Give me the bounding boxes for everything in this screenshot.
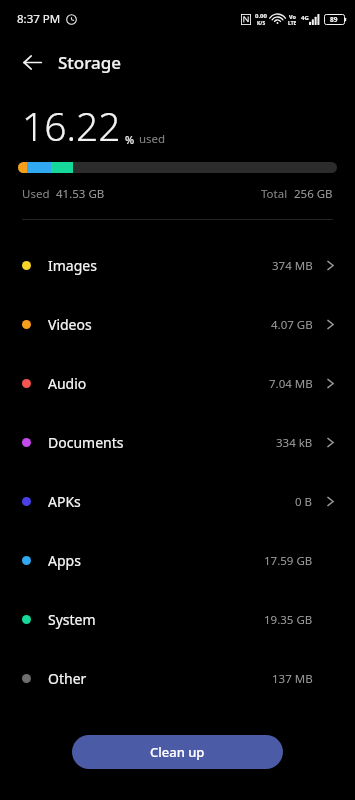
staticText: APKs xyxy=(48,492,81,511)
staticText: used xyxy=(139,131,166,147)
button[interactable]: System xyxy=(0,590,355,649)
button[interactable]: Videos xyxy=(0,295,355,354)
staticText: 256 GB xyxy=(294,186,333,202)
staticText: Clean up xyxy=(150,743,205,761)
button[interactable]: Other xyxy=(0,649,355,708)
staticText: Documents xyxy=(48,433,124,452)
staticText: 8:37 PM xyxy=(17,11,61,27)
staticText: 0 B xyxy=(295,494,313,510)
staticText: 16.22 xyxy=(22,99,121,152)
staticText: 41.53 GB xyxy=(56,186,105,202)
button[interactable]: Images xyxy=(0,236,355,295)
staticText: 334 kB xyxy=(276,435,313,451)
staticText: K/S xyxy=(257,20,266,27)
staticText: 0.00 xyxy=(255,12,267,20)
staticText: 4G xyxy=(301,14,309,22)
staticText: Images xyxy=(48,256,97,275)
staticText: 4.07 GB xyxy=(271,317,313,333)
staticText: Videos xyxy=(48,315,92,334)
button[interactable]: Clean up xyxy=(72,735,283,769)
button[interactable]: Apps xyxy=(0,531,355,590)
staticText: Total xyxy=(261,186,288,202)
staticText: 7.04 MB xyxy=(269,376,313,392)
staticText: Audio xyxy=(48,374,87,393)
staticText: 137 MB xyxy=(272,671,313,687)
staticText: System xyxy=(48,610,96,629)
staticText: 89 xyxy=(330,15,338,24)
button[interactable]: Audio xyxy=(0,354,355,413)
button[interactable]: Documents xyxy=(0,413,355,472)
staticText: 374 MB xyxy=(272,258,313,274)
staticText: LTE xyxy=(288,20,297,27)
button[interactable]: APKs xyxy=(0,472,355,531)
staticText: Vo xyxy=(289,13,296,20)
staticText: Used xyxy=(22,186,50,202)
staticText: Storage xyxy=(58,51,122,74)
staticText: % xyxy=(125,132,135,147)
staticText: Apps xyxy=(48,551,81,570)
staticText: 19.35 GB xyxy=(264,612,313,628)
staticText: Other xyxy=(48,669,87,688)
staticText: 17.59 GB xyxy=(264,553,313,569)
button[interactable]: Back xyxy=(10,40,54,84)
